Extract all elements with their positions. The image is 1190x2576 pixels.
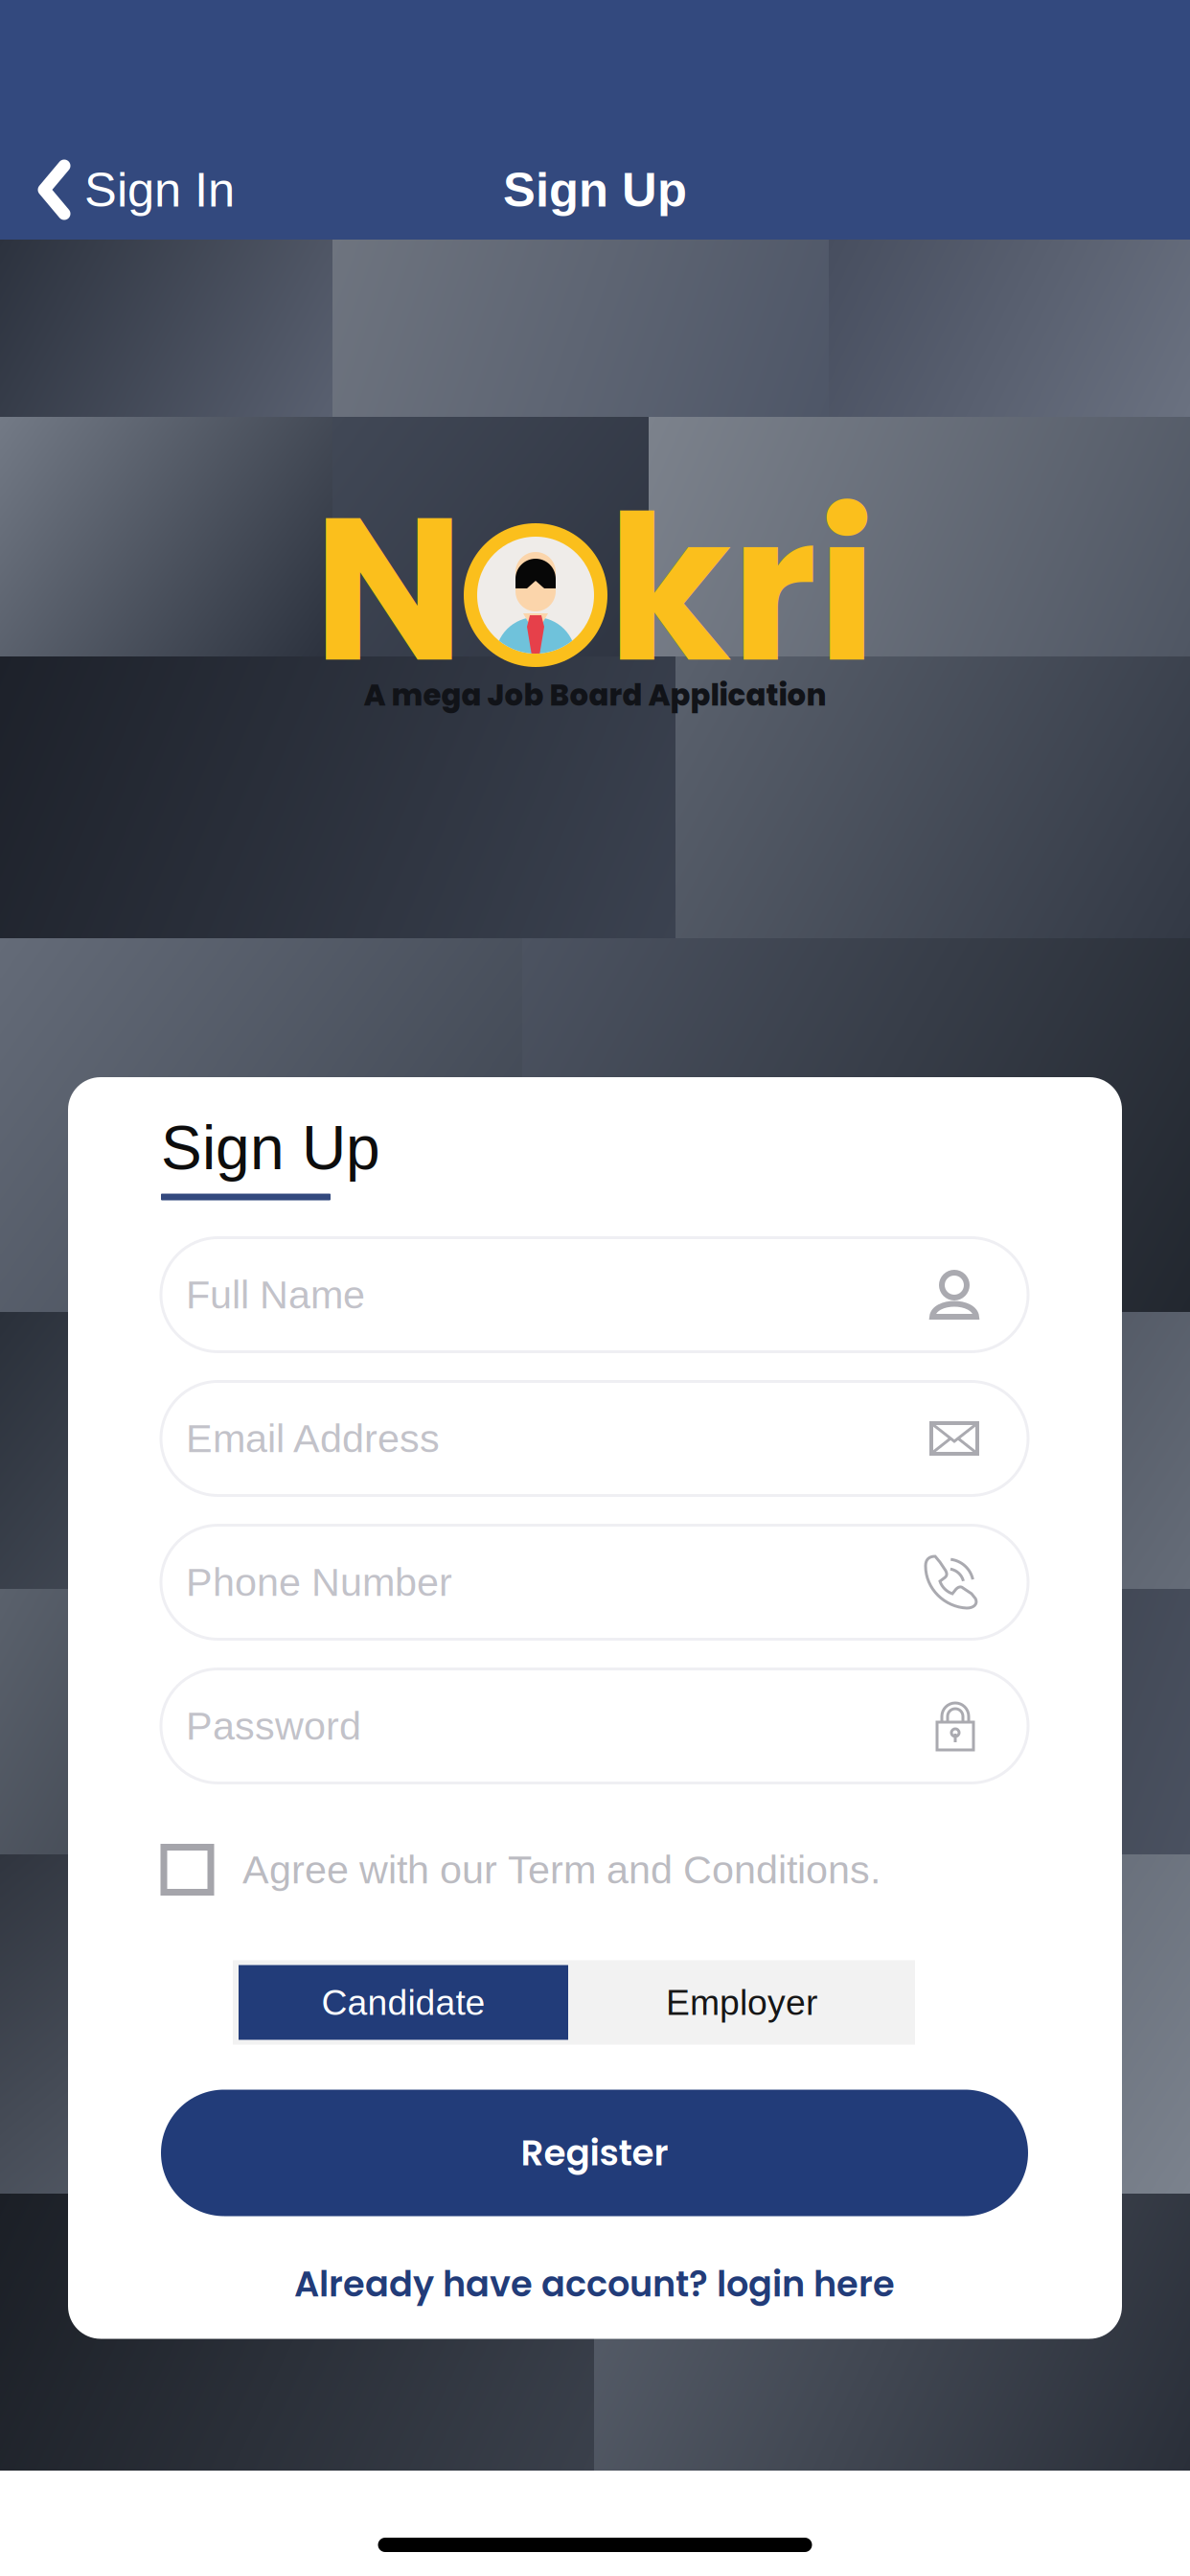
staticText: Sign In [84,163,235,217]
staticText: kri [607,449,877,730]
button[interactable]: Candidate [239,1965,568,2040]
staticText: Sign Up [503,163,687,217]
staticText: Phone Number [186,1560,452,1604]
staticText: Employer [666,1982,817,2022]
button[interactable]: Agree with our Term and Conditions. [161,1783,1028,1912]
staticText: Candidate [321,1982,485,2022]
staticText: Agree with our Term and Conditions. [242,1848,881,1892]
button[interactable]: Sign In [0,144,258,236]
staticText: Password [186,1704,361,1748]
staticText: Register [521,2128,668,2178]
staticText: Email Address [186,1416,440,1461]
staticText: Sign Up [161,1114,380,1182]
staticText: Full Name [186,1273,365,1317]
button[interactable]: Employer [568,1960,915,2045]
button[interactable]: Register [161,2090,1028,2216]
staticText: N [313,449,464,730]
staticText: Already have account? login here [294,2260,895,2309]
button[interactable]: Already have account? login here [161,2254,1028,2314]
staticText: A mega Job Board Application [364,675,826,716]
